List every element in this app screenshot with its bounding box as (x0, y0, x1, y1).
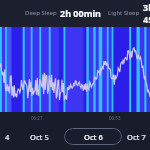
staticText: 00:53 (109, 115, 121, 121)
staticText: Light Sleep (108, 9, 140, 17)
button[interactable]: Oct 5 (14, 128, 64, 146)
staticText: Oct 6 (84, 132, 103, 142)
staticText: 3h 45min (143, 1, 150, 25)
staticText: 2h 00min (60, 7, 101, 19)
staticText: 5h 45min (59, 27, 100, 28)
staticText: HR Range (107, 27, 135, 28)
button[interactable] (0, 27, 150, 112)
staticText: 06:27 (31, 115, 43, 121)
staticText: Deep Sleep (25, 9, 57, 17)
staticText: 4 (5, 132, 10, 142)
button[interactable]: 4 (0, 128, 14, 146)
staticText: Oct 7 (127, 132, 146, 142)
staticText: Oct 5 (30, 132, 49, 142)
button[interactable]: Oct 7 (122, 128, 150, 146)
staticText: 42-68 bpm (138, 27, 150, 28)
button[interactable]: Oct 6 (64, 128, 122, 145)
staticText: Total Sleep (25, 27, 56, 28)
